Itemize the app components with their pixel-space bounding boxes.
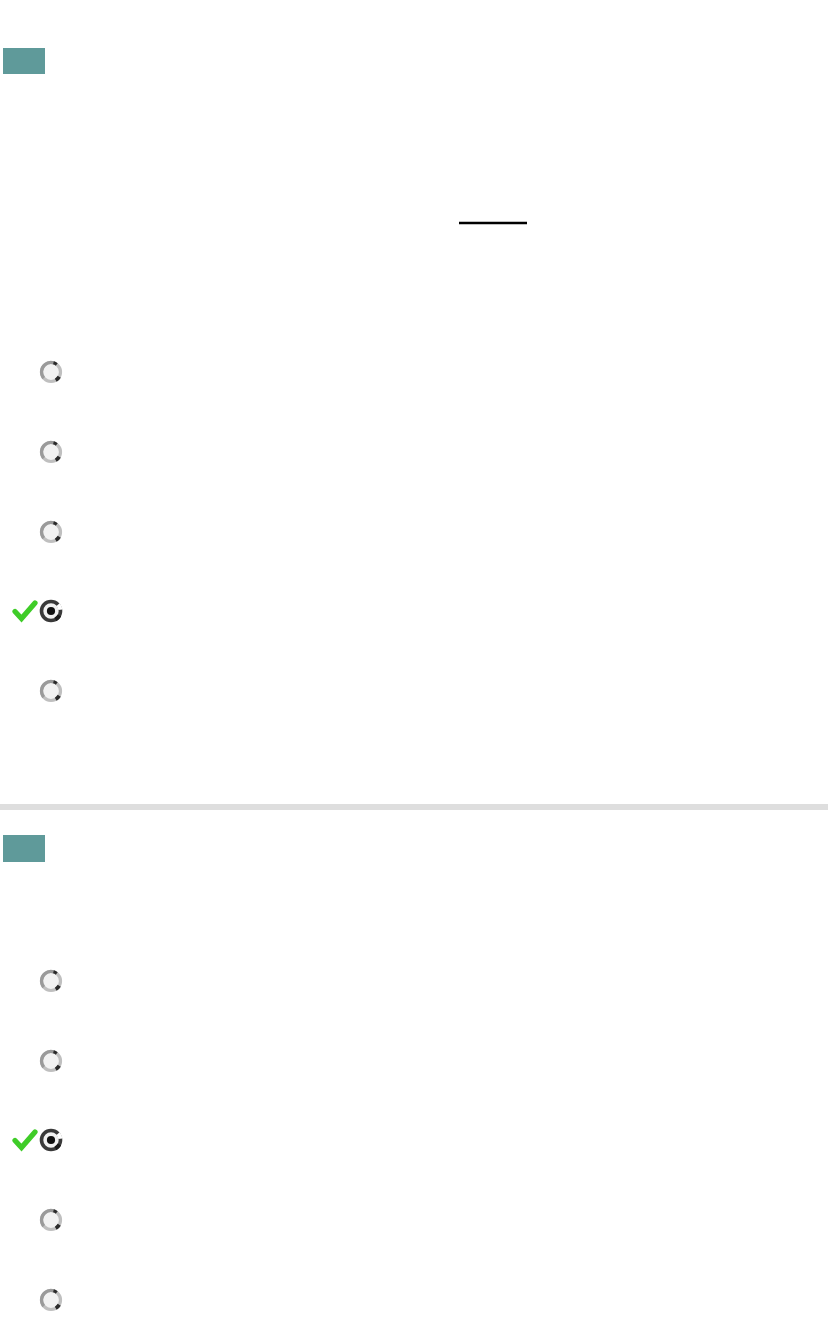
button[interactable]: Choice 1 — [0, 961, 835, 1001]
button[interactable]: Choice 3, selected — [0, 1120, 835, 1160]
button[interactable]: Option 3 — [0, 512, 835, 552]
button[interactable]: Choice 2 — [0, 1041, 835, 1081]
button[interactable]: Choice 4 — [0, 1200, 835, 1240]
button[interactable]: Option 4, selected — [0, 591, 835, 631]
button[interactable]: Option 2 — [0, 432, 835, 472]
button[interactable]: Choice 5 — [0, 1280, 835, 1320]
button[interactable]: Option 1 — [0, 352, 835, 392]
button[interactable]: Underlined field — [459, 214, 527, 230]
button[interactable]: Option 5 — [0, 671, 835, 711]
